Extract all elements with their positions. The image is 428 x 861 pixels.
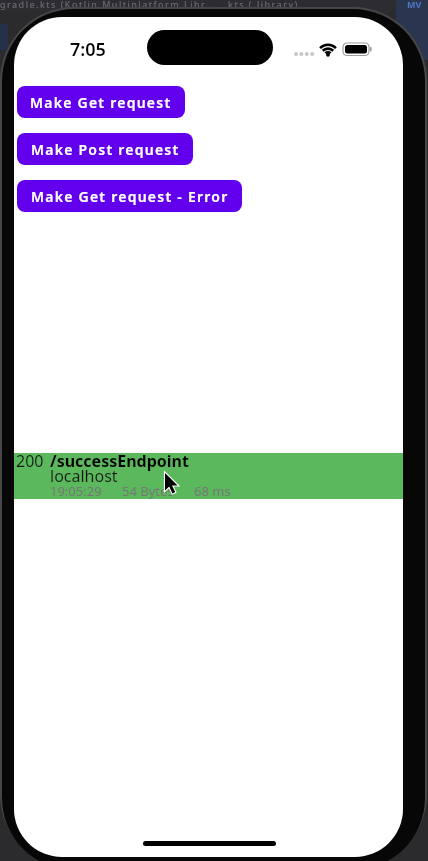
button[interactable]: Make Get request [17,86,185,118]
staticText: localhost [50,465,118,487]
staticText: 7:05 [70,37,106,58]
staticText: MV [407,0,422,10]
staticText: 68 ms [194,482,231,500]
staticText: 54 Bytes [122,482,174,500]
button[interactable]: Make Post request [17,133,193,165]
button[interactable]: Make Get request - Error [17,180,242,212]
staticText: Make Get request - Error [31,187,229,206]
staticText: Make Get request [30,93,172,112]
staticText: Make Post request [31,140,180,159]
staticText: 19:05:29 [50,482,102,500]
staticText: gradle.kts (Kotlin Multiplatform Libr.. … [0,0,299,10]
staticText: 200 [16,450,44,472]
staticText: /successEndpoint [50,450,189,472]
button[interactable]: 200 [14,453,403,499]
